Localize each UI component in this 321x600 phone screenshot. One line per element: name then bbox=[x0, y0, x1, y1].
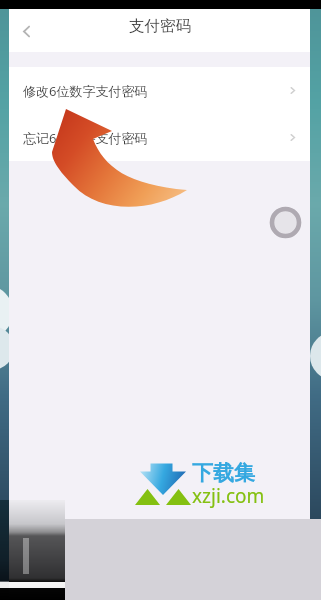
staticText: 忘记6位数字支付密码 bbox=[23, 129, 148, 147]
button[interactable]: 修改6位数字支付密码 bbox=[9, 67, 310, 114]
button[interactable]: Assistive touch bbox=[268, 205, 303, 240]
staticText: 下载集 bbox=[192, 460, 255, 486]
staticText: 支付密码 bbox=[129, 16, 191, 36]
button[interactable]: Back bbox=[9, 14, 43, 48]
staticText: 修改6位数字支付密码 bbox=[23, 82, 148, 100]
button[interactable]: 忘记6位数字支付密码 bbox=[9, 114, 310, 161]
staticText: xzji.com bbox=[192, 483, 265, 509]
